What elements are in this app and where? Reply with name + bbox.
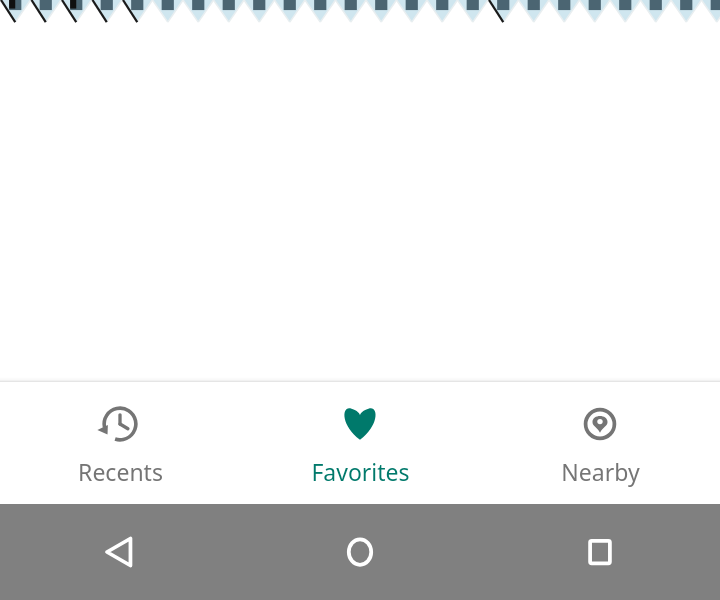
button[interactable]: Recent apps	[480, 504, 720, 600]
button[interactable]: Home	[240, 504, 480, 600]
button[interactable]: Recents	[0, 388, 240, 499]
button[interactable]: Back	[0, 504, 240, 600]
button[interactable]: Nearby	[480, 388, 720, 499]
staticText: Favorites	[311, 456, 410, 487]
button[interactable]: Favorites	[240, 388, 480, 499]
staticText: Recents	[78, 456, 163, 487]
staticText: Nearby	[561, 456, 640, 487]
